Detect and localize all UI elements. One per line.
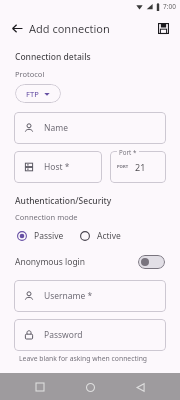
button[interactable]: PORT	[110, 151, 166, 183]
button[interactable]: Recents	[30, 377, 50, 397]
staticText: Anonymous login	[15, 256, 86, 268]
staticText: Host *	[44, 161, 70, 173]
staticText: Passive	[34, 230, 64, 242]
button[interactable]: Host *	[14, 151, 102, 183]
button[interactable]: Username *	[14, 280, 166, 312]
staticText: Authentication/Security	[15, 195, 112, 207]
button[interactable]: Active	[80, 230, 125, 242]
staticText: 7:00	[163, 2, 176, 11]
button[interactable]: Home	[80, 377, 100, 397]
staticText: Username *	[44, 290, 93, 302]
staticText: Connection details	[15, 51, 91, 63]
button[interactable]: FTP	[15, 84, 61, 103]
button[interactable]: Name	[14, 112, 166, 144]
button[interactable]: Save	[153, 18, 173, 38]
button[interactable]: Back	[130, 377, 150, 397]
staticText: Leave blank for asking when connecting	[19, 354, 148, 363]
staticText: Name	[44, 122, 68, 134]
staticText: Active	[97, 230, 121, 242]
button[interactable]: Passive	[17, 230, 68, 242]
staticText: FTP	[26, 89, 39, 99]
staticText: PORT	[117, 164, 129, 170]
staticText: Password	[44, 329, 83, 341]
staticText: Connection mode	[15, 212, 78, 222]
button[interactable]: Password	[14, 319, 166, 351]
staticText: 21	[135, 161, 146, 173]
button[interactable]: Anonymous login	[0, 253, 180, 271]
staticText: Add connection	[29, 21, 110, 36]
button[interactable]: Back	[7, 18, 27, 38]
staticText: Port *	[119, 148, 137, 156]
staticText: Protocol	[15, 69, 45, 79]
